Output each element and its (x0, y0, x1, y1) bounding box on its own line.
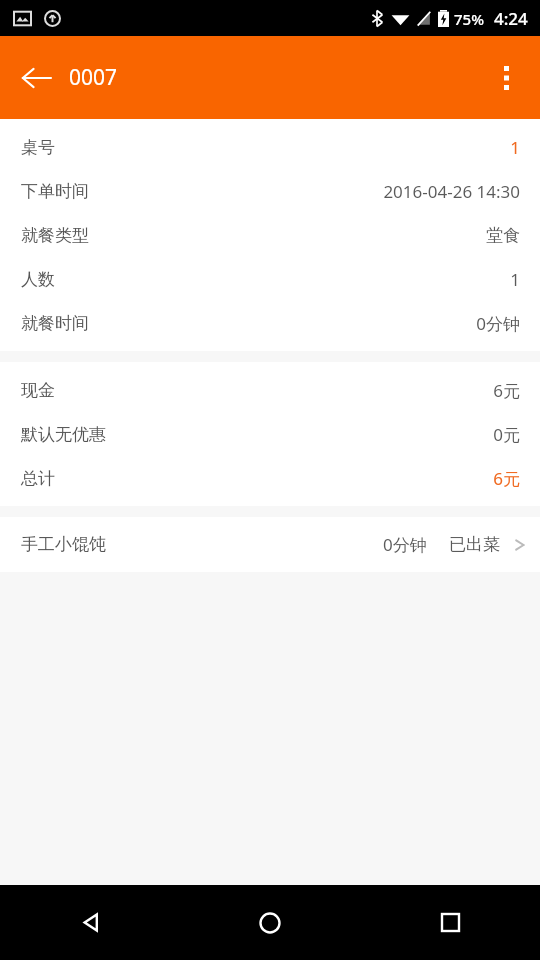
button[interactable]: Home (180, 885, 360, 960)
staticText: 已出菜 (449, 534, 500, 555)
staticText: 1 (510, 136, 520, 159)
button[interactable]: 下单时间 (0, 169, 540, 213)
staticText: 桌号 (21, 137, 55, 158)
staticText: 就餐类型 (21, 225, 89, 246)
staticText: 总计 (21, 468, 55, 489)
staticText: 0分钟 (383, 533, 427, 556)
staticText: 4:24 (494, 7, 528, 30)
staticText: 0元 (493, 423, 520, 446)
staticText: 6元 (493, 467, 520, 490)
staticText: 0分钟 (476, 312, 520, 335)
staticText: 1 (510, 268, 520, 291)
button[interactable]: 就餐类型 (0, 213, 540, 257)
staticText: 下单时间 (21, 181, 89, 202)
staticText: 手工小馄饨 (21, 534, 106, 555)
button[interactable]: Recent apps (360, 885, 540, 960)
staticText: 0007 (69, 63, 118, 92)
staticText: 75% (454, 9, 484, 29)
button[interactable]: More options (478, 50, 534, 106)
staticText: 现金 (21, 380, 55, 401)
button[interactable]: 默认无优惠 (0, 412, 540, 456)
button[interactable]: 手工小馄饨 (0, 517, 540, 572)
staticText: 2016-04-26 14:30 (383, 180, 520, 203)
button[interactable]: 桌号 (0, 125, 540, 169)
button[interactable]: 总计 (0, 456, 540, 500)
button[interactable]: 现金 (0, 368, 540, 412)
staticText: 堂食 (486, 225, 520, 246)
button[interactable]: Back (8, 50, 64, 106)
button[interactable]: Back (0, 885, 180, 960)
staticText: 默认无优惠 (21, 424, 106, 445)
staticText: 6元 (493, 379, 520, 402)
staticText: 人数 (21, 269, 55, 290)
button[interactable]: 人数 (0, 257, 540, 301)
button[interactable]: 就餐时间 (0, 301, 540, 345)
staticText: 就餐时间 (21, 313, 89, 334)
